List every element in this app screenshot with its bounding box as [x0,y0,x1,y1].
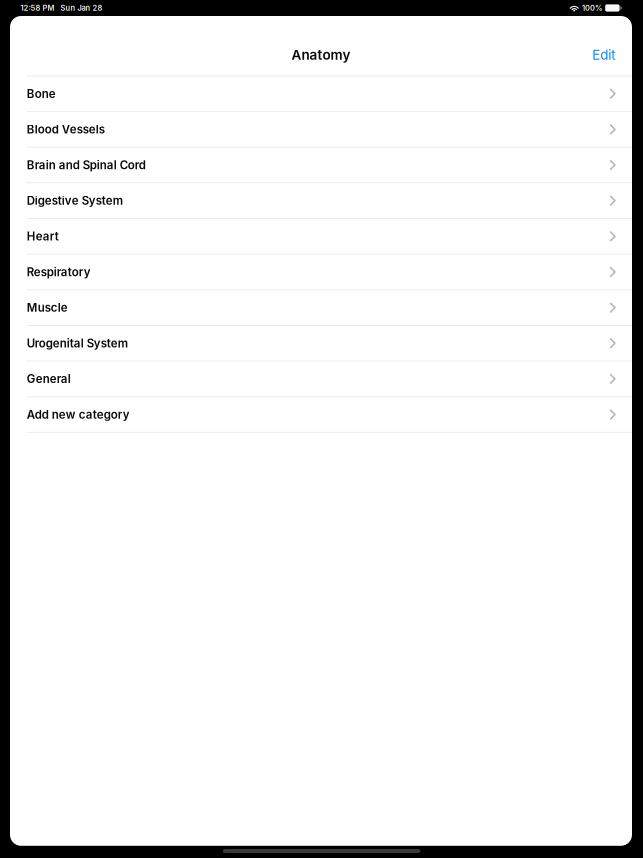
button[interactable]: Muscle [10,290,632,326]
staticText: Muscle [27,301,68,315]
staticText: Heart [27,229,59,243]
staticText: Edit [592,47,615,63]
button[interactable]: Urogenital System [10,326,632,362]
button[interactable]: Respiratory [10,255,632,290]
staticText: Add new category [27,408,130,421]
button[interactable]: Digestive System [10,183,632,219]
button[interactable]: Brain and Spinal Cord [10,148,632,183]
staticText: Anatomy [291,47,350,63]
staticText: 12:58 PM [20,3,54,12]
button[interactable]: Edit [580,41,615,69]
button[interactable]: General [10,362,632,397]
staticText: Urogenital System [27,336,128,350]
staticText: Brain and Spinal Cord [27,158,146,172]
staticText: Digestive System [27,194,123,208]
button[interactable]: Blood Vessels [10,112,632,148]
staticText: Respiratory [27,265,91,279]
button[interactable]: Add new category [10,397,632,433]
staticText: Bone [27,87,56,101]
staticText: General [27,372,71,386]
staticText: Blood Vessels [27,122,105,136]
staticText: 100% [582,3,602,12]
staticText: Sun Jan 28 [54,3,102,12]
button[interactable]: Bone [10,76,632,112]
button[interactable]: Heart [10,219,632,255]
